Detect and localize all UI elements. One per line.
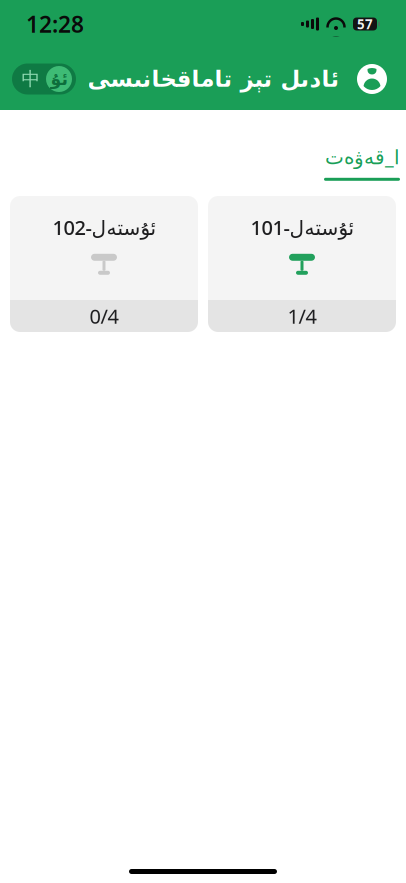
staticText: 1/4 [287, 303, 316, 329]
staticText: 12:28 [26, 9, 84, 39]
staticText: ئۇستەل-101 [250, 214, 354, 241]
button[interactable]: Profile [350, 57, 394, 101]
staticText: 57 [357, 15, 373, 33]
button[interactable]: ئۇستەل-102 [10, 196, 198, 332]
staticText: ئۇ [50, 69, 68, 89]
button[interactable]: ئۇستەل-101 [208, 196, 396, 332]
staticText: 中 [21, 67, 40, 90]
button[interactable]: Switch language [12, 63, 76, 94]
staticText: ا_قەۋەت [324, 143, 399, 170]
button[interactable]: ا_قەۋەت [324, 117, 400, 181]
staticText: ئۇستەل-102 [52, 214, 156, 241]
staticText: 0/4 [89, 303, 118, 329]
staticText: ئادىل تېز تاماقخانىسى [87, 66, 339, 92]
